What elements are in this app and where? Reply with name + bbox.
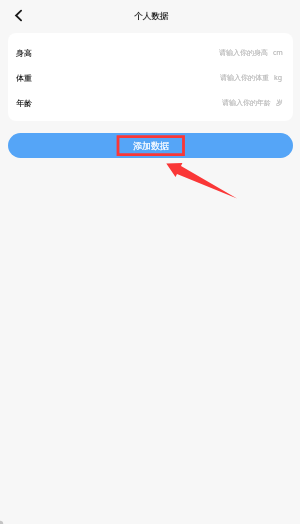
staticText: 岁 <box>276 98 283 107</box>
button[interactable]: 体重 <box>8 65 293 90</box>
button[interactable]: Back <box>4 1 32 29</box>
staticText: 请输入你的身高 <box>219 48 268 57</box>
staticText: 个人数据 <box>134 11 169 22</box>
staticText: 添加数据 <box>133 140 169 151</box>
staticText: 请输入你的年龄 <box>222 98 271 107</box>
staticText: 体重 <box>16 73 32 83</box>
button[interactable]: 年龄 <box>8 90 293 115</box>
staticText: cm <box>273 48 283 58</box>
staticText: kg <box>274 73 283 83</box>
staticText: 请输入你的体重 <box>220 73 269 82</box>
button[interactable]: 添加数据 <box>8 133 293 158</box>
staticText: 年龄 <box>16 98 32 108</box>
button[interactable]: 身高 <box>8 40 293 65</box>
staticText: 身高 <box>16 48 32 58</box>
